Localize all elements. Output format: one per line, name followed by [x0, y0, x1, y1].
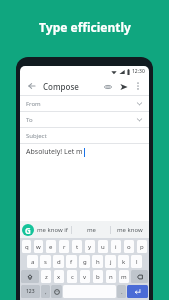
staticText: o	[127, 243, 131, 251]
staticText: Type efficiently	[39, 19, 131, 35]
button[interactable]: .	[117, 285, 126, 298]
button[interactable]: Attach file	[101, 80, 114, 93]
staticText: 12:30	[132, 68, 145, 75]
staticText: Absolutely! Let m	[26, 147, 83, 157]
button[interactable]: c	[67, 270, 77, 283]
staticText: 123	[26, 288, 35, 295]
staticText: Subject	[26, 132, 47, 140]
staticText: r	[63, 243, 66, 251]
button[interactable]: Subject	[20, 128, 149, 143]
staticText: q	[25, 243, 29, 251]
staticText: v	[83, 273, 87, 281]
button[interactable]: e	[46, 240, 56, 253]
button[interactable]: i	[111, 240, 121, 253]
button[interactable]: p	[137, 240, 147, 253]
button[interactable]: d	[53, 255, 64, 268]
button[interactable]: me	[72, 221, 110, 238]
button[interactable]: f	[66, 255, 77, 268]
button[interactable]: 123	[21, 285, 40, 298]
button[interactable]: Back	[25, 79, 39, 93]
button[interactable]: g	[79, 255, 90, 268]
staticText: l	[136, 258, 138, 266]
button[interactable]: t	[72, 240, 82, 253]
staticText: w	[36, 243, 41, 251]
staticText: j	[110, 258, 112, 266]
staticText: z	[45, 273, 48, 281]
staticText: e	[49, 243, 53, 251]
staticText: h	[96, 258, 100, 266]
button[interactable]: ,	[41, 285, 50, 298]
button[interactable]: Emoji	[51, 285, 62, 298]
staticText: n	[109, 273, 113, 281]
button[interactable]: s	[40, 255, 51, 268]
staticText: x	[57, 273, 61, 281]
staticText: Compose	[43, 81, 79, 92]
button[interactable]: Backspace	[131, 270, 148, 283]
button[interactable]: u	[98, 240, 108, 253]
button[interactable]: From	[20, 96, 149, 111]
button[interactable]: m	[119, 270, 129, 283]
button[interactable]: r	[59, 240, 69, 253]
button[interactable]: me know	[111, 221, 149, 238]
button[interactable]: h	[92, 255, 103, 268]
staticText: a	[31, 258, 35, 266]
button[interactable]: j	[105, 255, 116, 268]
staticText: f	[70, 258, 73, 266]
staticText: i	[115, 243, 117, 251]
staticText: .	[121, 288, 123, 296]
staticText: ,	[45, 288, 47, 296]
staticText: me know	[117, 226, 143, 234]
button[interactable]: Assistant	[22, 224, 34, 236]
staticText: g	[83, 258, 87, 266]
button[interactable]: Send	[117, 80, 130, 93]
button[interactable]: w	[34, 240, 43, 253]
button[interactable]: y	[85, 240, 95, 253]
button[interactable]: Shift	[21, 270, 39, 283]
button[interactable]: b	[93, 270, 103, 283]
staticText: From	[26, 100, 41, 108]
staticText: p	[140, 243, 144, 251]
staticText: u	[101, 243, 105, 251]
button[interactable]: x	[54, 270, 64, 283]
button[interactable]: More options	[132, 80, 144, 92]
button[interactable]: q	[22, 240, 31, 253]
staticText: G	[25, 225, 31, 236]
button[interactable]: v	[80, 270, 90, 283]
staticText: t	[76, 243, 79, 251]
staticText: c	[71, 273, 74, 281]
staticText: To	[26, 116, 33, 124]
button[interactable]: a	[27, 255, 38, 268]
button[interactable]: me know if	[34, 221, 71, 238]
button[interactable]: k	[118, 255, 129, 268]
staticText: me	[87, 226, 96, 234]
button[interactable]: o	[124, 240, 134, 253]
staticText: k	[122, 258, 126, 266]
staticText: y	[88, 243, 92, 251]
staticText: me know if	[37, 226, 68, 234]
staticText: s	[44, 258, 47, 266]
button[interactable]: n	[106, 270, 116, 283]
button[interactable]: Absolutely! Let m	[26, 144, 143, 160]
button[interactable]: Enter	[127, 285, 148, 298]
staticText: d	[57, 258, 61, 266]
staticText: b	[96, 273, 100, 281]
staticText: m	[121, 273, 127, 281]
button[interactable]: To	[20, 112, 149, 127]
button[interactable]: z	[41, 270, 51, 283]
button[interactable]: l	[131, 255, 142, 268]
